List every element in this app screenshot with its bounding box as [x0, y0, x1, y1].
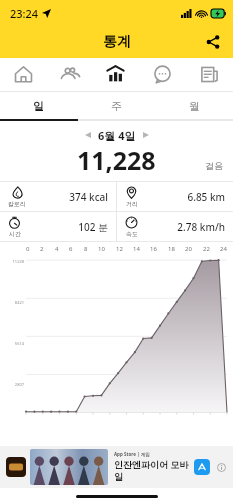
button[interactable]: Chat	[139, 58, 186, 91]
staticText: 월	[189, 99, 200, 113]
button[interactable]: Home	[0, 58, 46, 91]
staticText: 12	[116, 245, 123, 253]
button[interactable]: Previous day	[78, 127, 98, 143]
staticText: 20	[185, 245, 192, 253]
button[interactable]: Calories	[0, 182, 116, 211]
button[interactable]: News	[186, 58, 233, 91]
staticText: 24	[220, 245, 227, 253]
staticText: 22	[203, 245, 210, 253]
other: Distance	[125, 186, 138, 208]
staticText: 6.85 km	[138, 190, 225, 204]
button[interactable]: 주	[77, 92, 155, 119]
staticText: 8	[84, 245, 88, 253]
staticText: 0	[26, 245, 30, 253]
button[interactable]: Open in App Store	[194, 459, 210, 475]
staticText: 인잔엔파이어 모바일	[114, 458, 194, 483]
staticText: 16	[150, 245, 157, 253]
staticText: 속도	[126, 230, 138, 238]
staticText: 5614	[0, 341, 24, 346]
staticText: 2807	[0, 382, 24, 387]
other: Time	[8, 216, 21, 238]
button[interactable]: 월	[155, 92, 233, 119]
staticText: 칼로리	[8, 200, 26, 208]
button[interactable]: Time	[0, 212, 116, 241]
staticText: App Store | 게임	[114, 451, 150, 457]
staticText: 23:24	[10, 6, 39, 21]
staticText: 통계	[103, 33, 131, 51]
button[interactable]: Next day	[136, 127, 156, 143]
staticText: 10	[98, 245, 105, 253]
staticText: 8421	[0, 300, 24, 305]
staticText: 374 kcal	[26, 190, 108, 204]
staticText: 걸음	[205, 160, 223, 171]
staticText: 2	[40, 245, 44, 253]
staticText: 2.78 km/h	[138, 220, 225, 234]
staticText: 14	[133, 245, 140, 253]
staticText: 4	[55, 245, 59, 253]
button[interactable]: Share	[199, 28, 227, 56]
other: Speed	[125, 216, 138, 238]
button[interactable]: Distance	[117, 182, 233, 211]
staticText: 18	[168, 245, 175, 253]
staticText: 6월 4일	[98, 128, 136, 143]
staticText: 거리	[126, 200, 138, 208]
staticText: 시간	[9, 230, 21, 238]
staticText: 102 분	[21, 220, 108, 234]
button[interactable]: Ad info	[215, 461, 227, 473]
button[interactable]: Friends	[46, 58, 92, 91]
button[interactable]: App Store | 게임	[0, 446, 233, 488]
other: Calories	[8, 186, 26, 208]
button[interactable]: Statistics	[92, 58, 139, 91]
button[interactable]: 일	[0, 92, 77, 119]
staticText: 주	[111, 99, 122, 113]
staticText: 6	[69, 245, 73, 253]
staticText: 일	[33, 99, 44, 113]
staticText: 11,228	[77, 143, 156, 175]
staticText: 11228	[0, 259, 24, 264]
button[interactable]: Speed	[117, 212, 233, 241]
